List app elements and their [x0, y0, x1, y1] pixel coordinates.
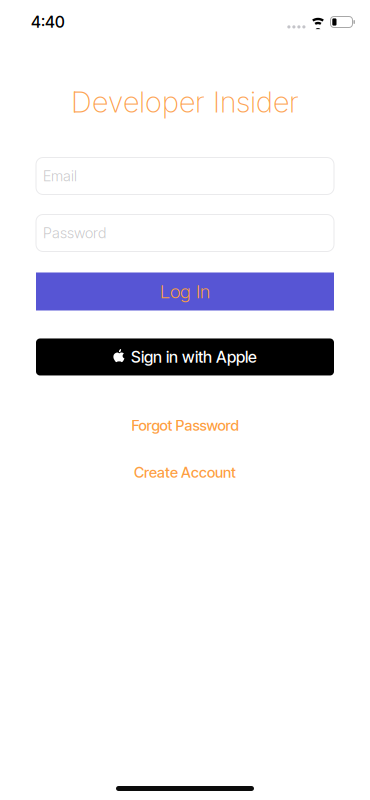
staticText: 4:40	[31, 12, 65, 32]
staticText: Developer Insider	[71, 84, 299, 119]
staticText: Log In	[160, 280, 210, 303]
button[interactable]: Log In	[36, 272, 334, 310]
staticText: Create Account	[134, 464, 236, 481]
staticText: Forgot Password	[131, 417, 238, 434]
button[interactable]: Email	[36, 157, 334, 194]
staticText: Sign in with Apple	[131, 347, 257, 367]
staticText: Email	[43, 167, 77, 185]
button[interactable]: Password	[36, 214, 334, 251]
button[interactable]: Sign in with Apple	[36, 338, 334, 375]
button[interactable]: Create Account	[0, 462, 370, 482]
staticText: Password	[43, 224, 106, 242]
button[interactable]: Forgot Password	[0, 415, 370, 435]
